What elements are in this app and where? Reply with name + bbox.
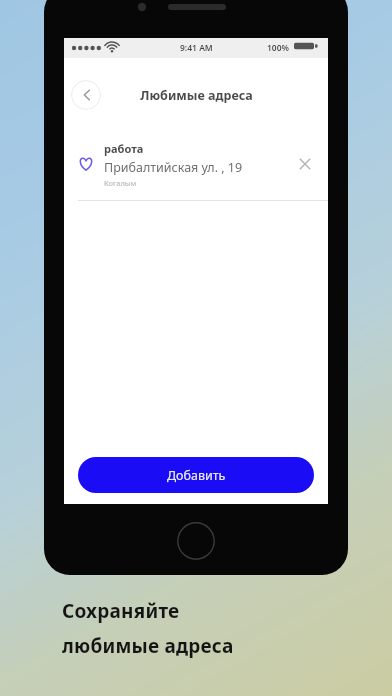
- staticText: работа: [104, 141, 144, 156]
- button[interactable]: Удалить: [290, 149, 320, 179]
- button[interactable]: Назад: [71, 80, 101, 110]
- staticText: Сохраняйте: [62, 598, 180, 624]
- button[interactable]: работа: [64, 128, 328, 201]
- staticText: Добавить: [167, 467, 226, 484]
- staticText: Когалым: [104, 178, 137, 188]
- staticText: Прибалтийская ул. , 19: [104, 159, 243, 176]
- staticText: 9:41 AM: [180, 42, 213, 54]
- staticText: Любимые адреса: [140, 87, 253, 104]
- staticText: любимые адреса: [62, 633, 234, 659]
- button[interactable]: Добавить: [78, 457, 314, 493]
- staticText: 100%: [267, 42, 290, 54]
